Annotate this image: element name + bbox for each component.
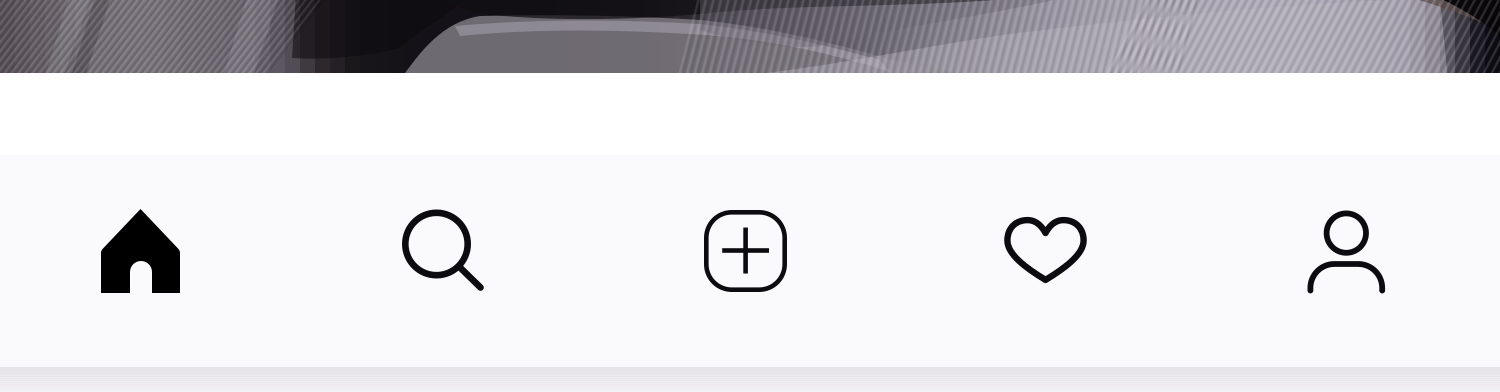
button[interactable]: New post [600, 155, 900, 367]
button[interactable]: Search [300, 155, 600, 367]
button[interactable]: Profile [1200, 155, 1500, 367]
button[interactable]: Activity [900, 155, 1200, 367]
button[interactable]: Home [0, 155, 300, 367]
